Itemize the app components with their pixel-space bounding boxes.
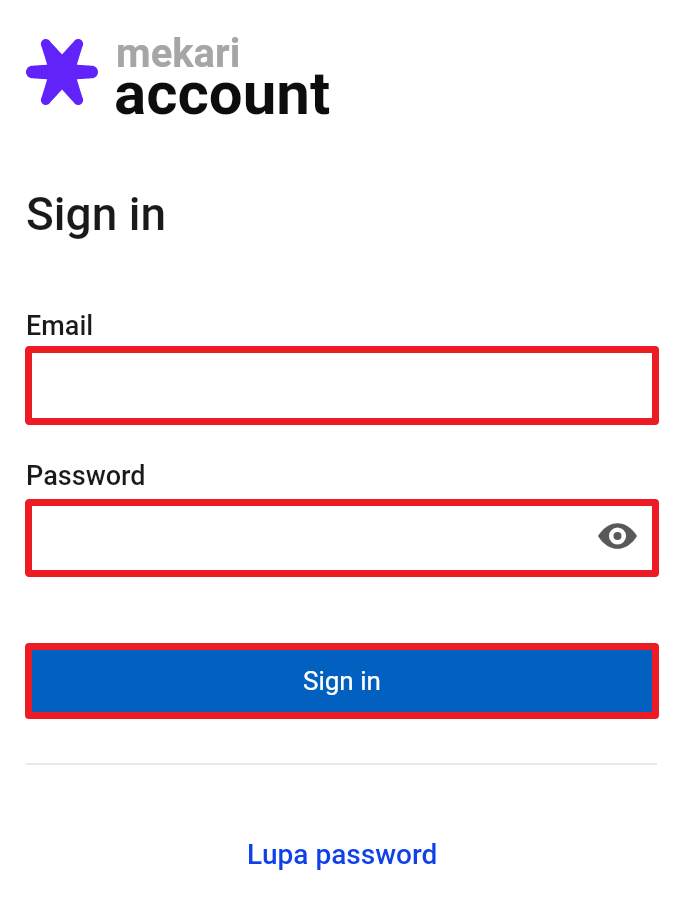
staticText: Sign in	[303, 666, 381, 696]
staticText: Password	[26, 460, 146, 492]
button[interactable]: Sign in	[32, 650, 652, 712]
button[interactable]: Lupa password	[247, 838, 438, 871]
staticText: mekari	[116, 30, 241, 77]
staticText: account	[114, 58, 331, 128]
button[interactable]	[25, 346, 659, 425]
button[interactable]: Show password	[25, 499, 659, 577]
button[interactable]: Show password	[594, 513, 640, 559]
staticText: Email	[26, 310, 94, 342]
staticText: Sign in	[26, 187, 167, 241]
